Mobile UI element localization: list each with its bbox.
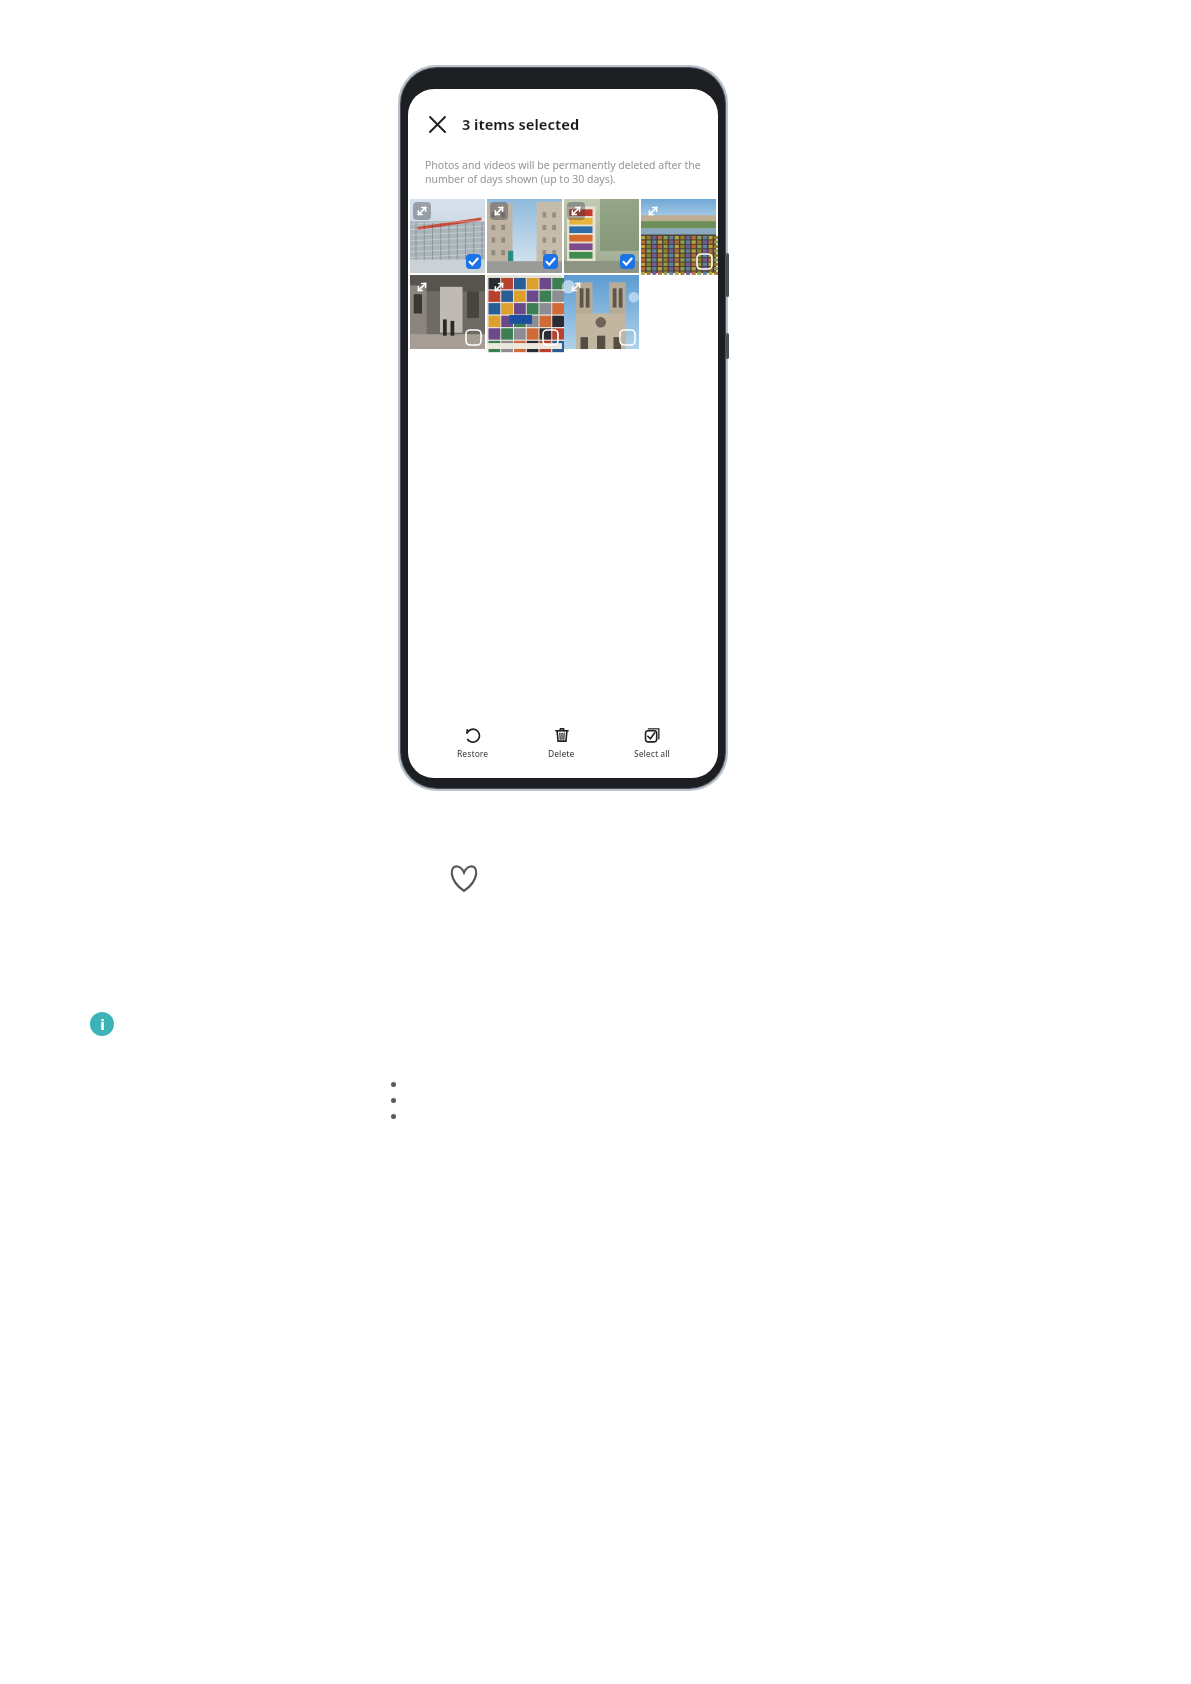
button[interactable]: Photo [410, 275, 485, 349]
button[interactable]: Information [90, 1012, 114, 1036]
button[interactable]: Restore [452, 724, 494, 762]
button[interactable]: Delete [543, 724, 580, 762]
button[interactable]: Close selection [424, 111, 450, 137]
button[interactable]: Select all [629, 724, 675, 762]
button[interactable]: Photo, selected [410, 199, 485, 273]
button[interactable]: Photo, selected [487, 199, 562, 273]
button[interactable]: Favourite [446, 860, 482, 896]
staticText: Delete [548, 748, 575, 760]
button[interactable]: Photo [564, 275, 639, 349]
staticText: Select all [634, 748, 670, 760]
staticText: i [100, 1015, 105, 1034]
button[interactable]: Photo [641, 199, 716, 273]
button[interactable]: Photo [487, 275, 562, 349]
staticText: Restore [457, 748, 489, 760]
staticText: 3 items selected [462, 114, 580, 134]
button[interactable]: Photo, selected [564, 199, 639, 273]
staticText: Photos and videos will be permanently de… [425, 158, 702, 186]
